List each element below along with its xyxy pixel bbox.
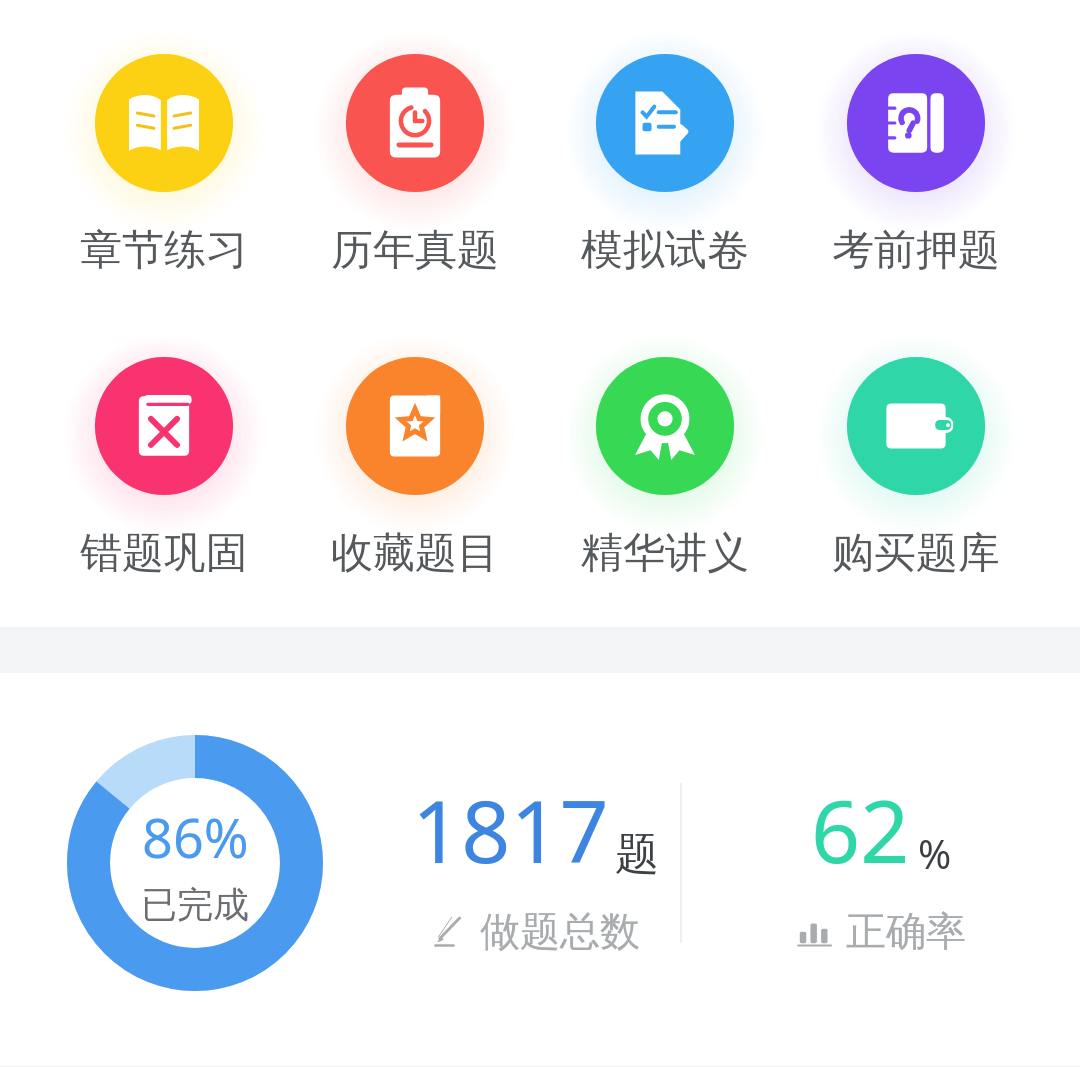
staticText: 购买题库 — [832, 527, 1000, 580]
staticText: % — [918, 826, 952, 880]
button[interactable]: 购买题库 — [829, 339, 1003, 580]
staticText: 题 — [615, 827, 659, 882]
button[interactable]: 历年真题 — [328, 36, 502, 277]
staticText: 做题总数 — [480, 906, 640, 956]
button[interactable]: 错题巩固 — [77, 339, 251, 580]
button[interactable]: 考前押题 — [829, 36, 1003, 277]
button[interactable]: 精华讲义 — [578, 339, 752, 580]
staticText: 历年真题 — [331, 224, 499, 277]
staticText: 模拟试卷 — [581, 224, 749, 277]
staticText: 章节练习 — [80, 224, 248, 277]
staticText: 62 — [811, 771, 910, 888]
button[interactable]: 收藏题目 — [328, 339, 502, 580]
staticText: 1817 — [412, 771, 609, 888]
staticText: 错题巩固 — [80, 527, 248, 580]
button[interactable]: 章节练习 — [77, 36, 251, 277]
staticText: 考前押题 — [832, 224, 1000, 277]
staticText: 已完成 — [141, 882, 249, 927]
staticText: 收藏题目 — [331, 527, 499, 580]
button[interactable]: 模拟试卷 — [578, 36, 752, 277]
staticText: 正确率 — [846, 906, 966, 956]
staticText: 86% — [142, 800, 249, 874]
staticText: 精华讲义 — [581, 527, 749, 580]
